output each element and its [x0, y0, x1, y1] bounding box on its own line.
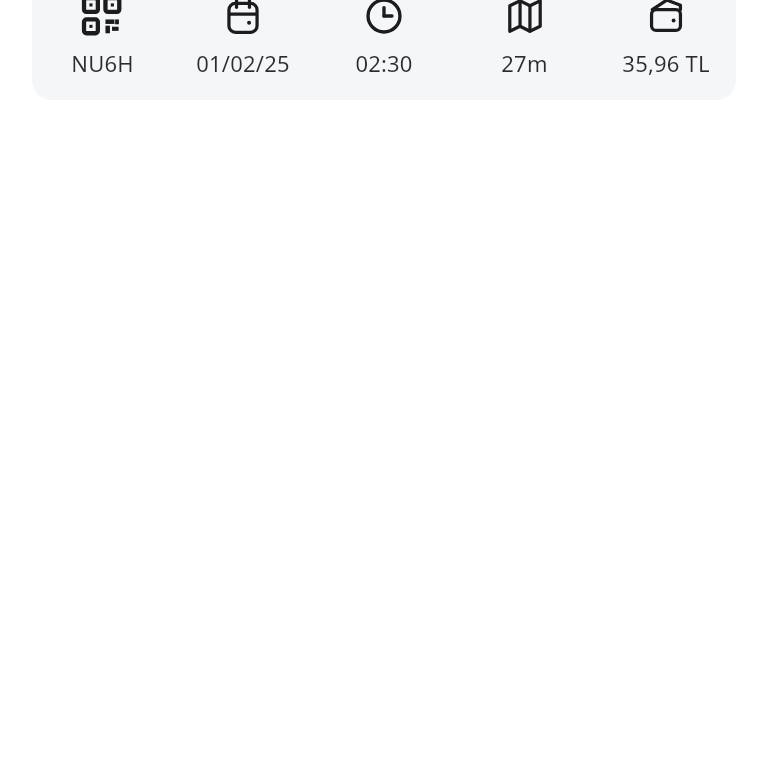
button[interactable]: Travel date — [172, 0, 313, 82]
staticText: 01/02/25 — [196, 48, 290, 78]
staticText: 35,96 TL — [622, 48, 710, 78]
staticText: NU6H — [71, 48, 134, 78]
staticText: 02:30 — [355, 48, 413, 78]
button[interactable]: Route — [454, 0, 595, 82]
staticText: 27m — [501, 48, 548, 78]
button[interactable]: Ticket code — [32, 0, 172, 82]
button[interactable]: Departure time — [313, 0, 454, 82]
button[interactable]: Fare — [595, 0, 736, 82]
